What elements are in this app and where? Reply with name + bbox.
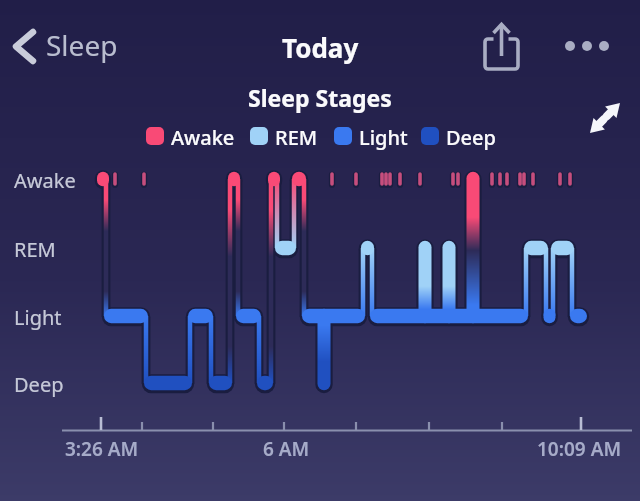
button[interactable] (558, 28, 616, 64)
staticText: Deep (446, 124, 496, 151)
staticText: 3:26 AM (65, 436, 139, 462)
staticText: Light (14, 304, 62, 331)
staticText: Today (282, 30, 359, 65)
staticText: Awake (171, 124, 235, 151)
staticText: REM (275, 124, 318, 151)
staticText: Light (359, 124, 408, 151)
staticText: REM (14, 236, 56, 263)
button[interactable] (478, 18, 526, 74)
staticText: Sleep Stages (248, 82, 392, 113)
button[interactable] (584, 97, 626, 139)
staticText: 10:09 AM (537, 436, 622, 462)
button[interactable]: Sleep (10, 24, 140, 66)
staticText: Sleep (46, 26, 118, 64)
staticText: Awake (14, 167, 76, 194)
staticText: 6 AM (263, 436, 310, 462)
staticText: Deep (14, 371, 64, 398)
